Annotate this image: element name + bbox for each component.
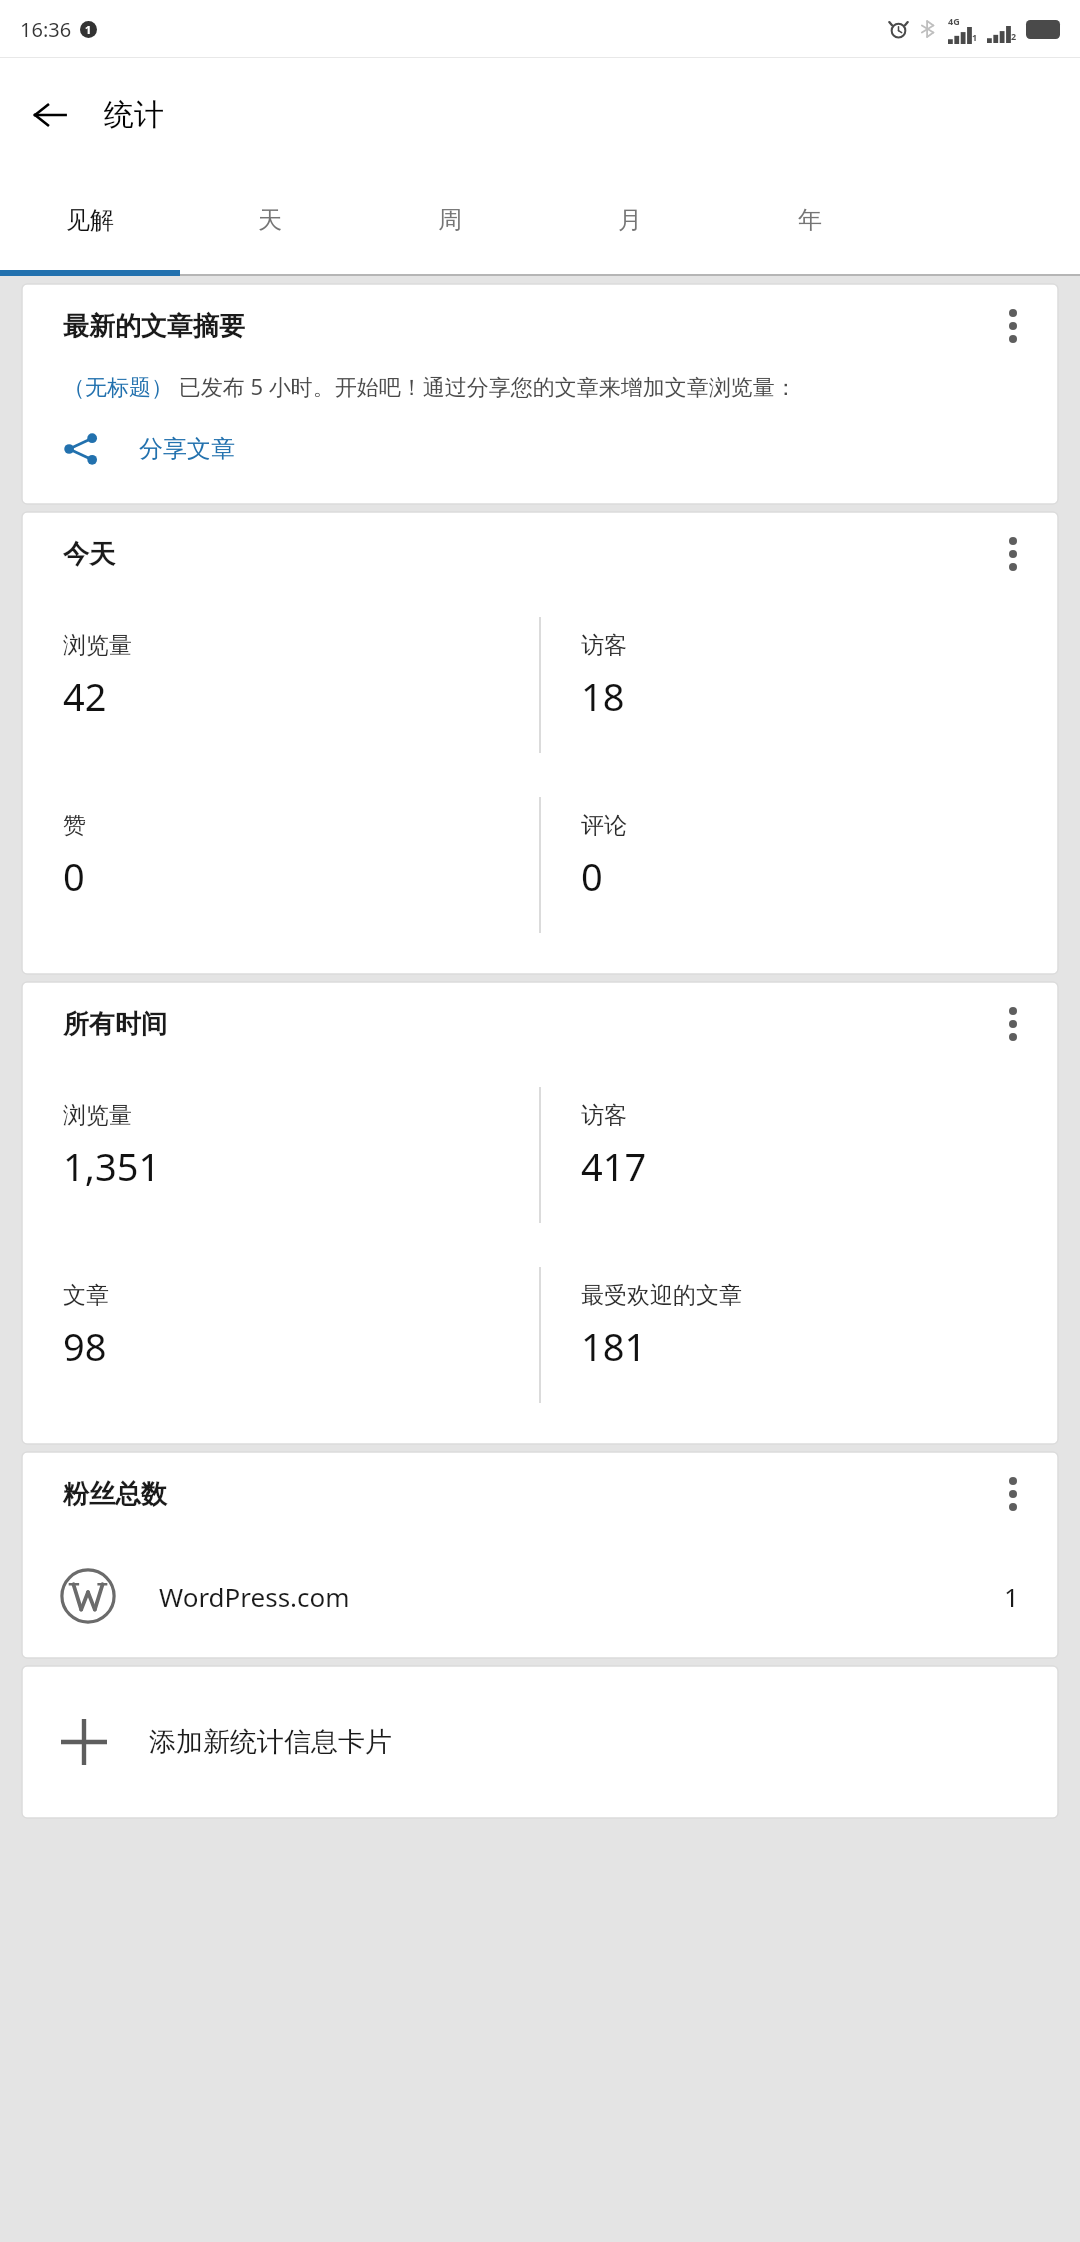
staticText: 周 — [438, 205, 462, 235]
button[interactable]: 评论 — [541, 775, 1057, 955]
staticText: 评论 — [581, 811, 627, 840]
button[interactable]: More options — [983, 296, 1043, 356]
staticText: 见解 — [66, 205, 114, 235]
button[interactable]: 浏览量 — [23, 595, 539, 775]
staticText: 文章 — [63, 1281, 109, 1310]
button[interactable]: WordPress.com — [23, 1535, 1057, 1657]
staticText: 月 — [618, 205, 642, 235]
staticText: 分享文章 — [139, 434, 235, 464]
staticText: （无标题） 已发布 5 小时。开始吧！通过分享您的文章来增加文章浏览量： — [63, 371, 797, 401]
staticText: 1 — [85, 22, 92, 37]
button[interactable]: 分享文章 — [23, 401, 1057, 497]
staticText: 0 — [63, 850, 85, 902]
staticText: 417 — [581, 1140, 647, 1192]
button[interactable]: More options — [983, 1464, 1043, 1524]
staticText: 0 — [581, 850, 603, 902]
button[interactable]: More options — [983, 524, 1043, 584]
button[interactable]: 最受欢迎的文章 — [541, 1245, 1057, 1425]
staticText: 4G — [948, 15, 960, 27]
button[interactable]: 年 — [720, 172, 900, 276]
staticText: 42 — [63, 670, 107, 722]
button[interactable]: 文章 — [23, 1245, 539, 1425]
staticText: 统计 — [104, 96, 164, 134]
staticText: 181 — [581, 1320, 647, 1372]
staticText: 最新的文章摘要 — [63, 310, 245, 343]
staticText: 1 — [972, 31, 978, 43]
staticText: 访客 — [581, 631, 627, 660]
button[interactable]: More options — [983, 994, 1043, 1054]
button[interactable]: 赞 — [23, 775, 539, 955]
button[interactable]: 访客 — [541, 595, 1057, 775]
button[interactable]: 月 — [540, 172, 720, 276]
staticText: 赞 — [63, 811, 86, 840]
staticText: 1 — [1004, 1579, 1019, 1614]
staticText: 1,351 — [63, 1140, 161, 1192]
button[interactable]: Back — [22, 87, 78, 143]
staticText: 所有时间 — [63, 1008, 167, 1041]
staticText: WordPress.com — [159, 1579, 350, 1614]
staticText: 浏览量 — [63, 631, 132, 660]
button[interactable]: 浏览量 — [23, 1065, 539, 1245]
staticText: 年 — [798, 205, 822, 235]
staticText: 18 — [581, 670, 625, 722]
button[interactable]: 添加新统计信息卡片 — [23, 1667, 1057, 1817]
staticText: 16:36 — [20, 16, 72, 43]
button[interactable]: 见解 — [0, 172, 180, 276]
staticText: 添加新统计信息卡片 — [149, 1725, 392, 1759]
staticText: 访客 — [581, 1101, 627, 1130]
staticText: 浏览量 — [63, 1101, 132, 1130]
staticText: 今天 — [63, 538, 115, 571]
button[interactable]: 周 — [360, 172, 540, 276]
staticText: 最受欢迎的文章 — [581, 1281, 742, 1310]
staticText: 2 — [1011, 30, 1017, 42]
button[interactable]: 天 — [180, 172, 360, 276]
staticText: 粉丝总数 — [63, 1478, 167, 1511]
staticText: 天 — [258, 205, 282, 235]
staticText: 98 — [63, 1320, 107, 1372]
button[interactable]: 访客 — [541, 1065, 1057, 1245]
